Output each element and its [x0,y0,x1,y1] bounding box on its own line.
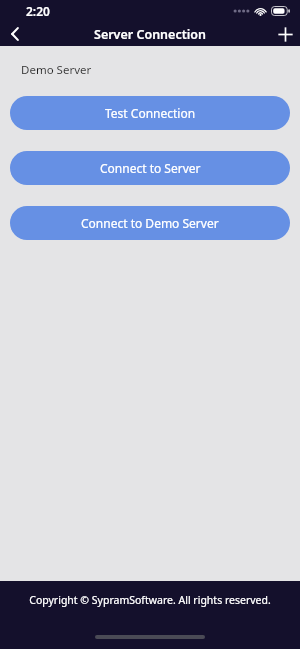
staticText: Copyright © SypramSoftware. All rights r… [0,593,300,607]
button[interactable]: Test Connection [10,96,290,130]
button[interactable]: Connect to Demo Server [10,206,290,240]
staticText: Test Connection [105,105,196,121]
staticText: Connect to Server [100,160,201,176]
staticText: Demo Server [21,62,92,78]
button[interactable]: Back [0,22,30,46]
staticText: Server Connection [94,26,206,43]
staticText: 2:20 [26,3,50,19]
staticText: Connect to Demo Server [81,215,219,231]
button[interactable]: Connect to Server [10,151,290,185]
button[interactable]: Add [270,22,300,46]
